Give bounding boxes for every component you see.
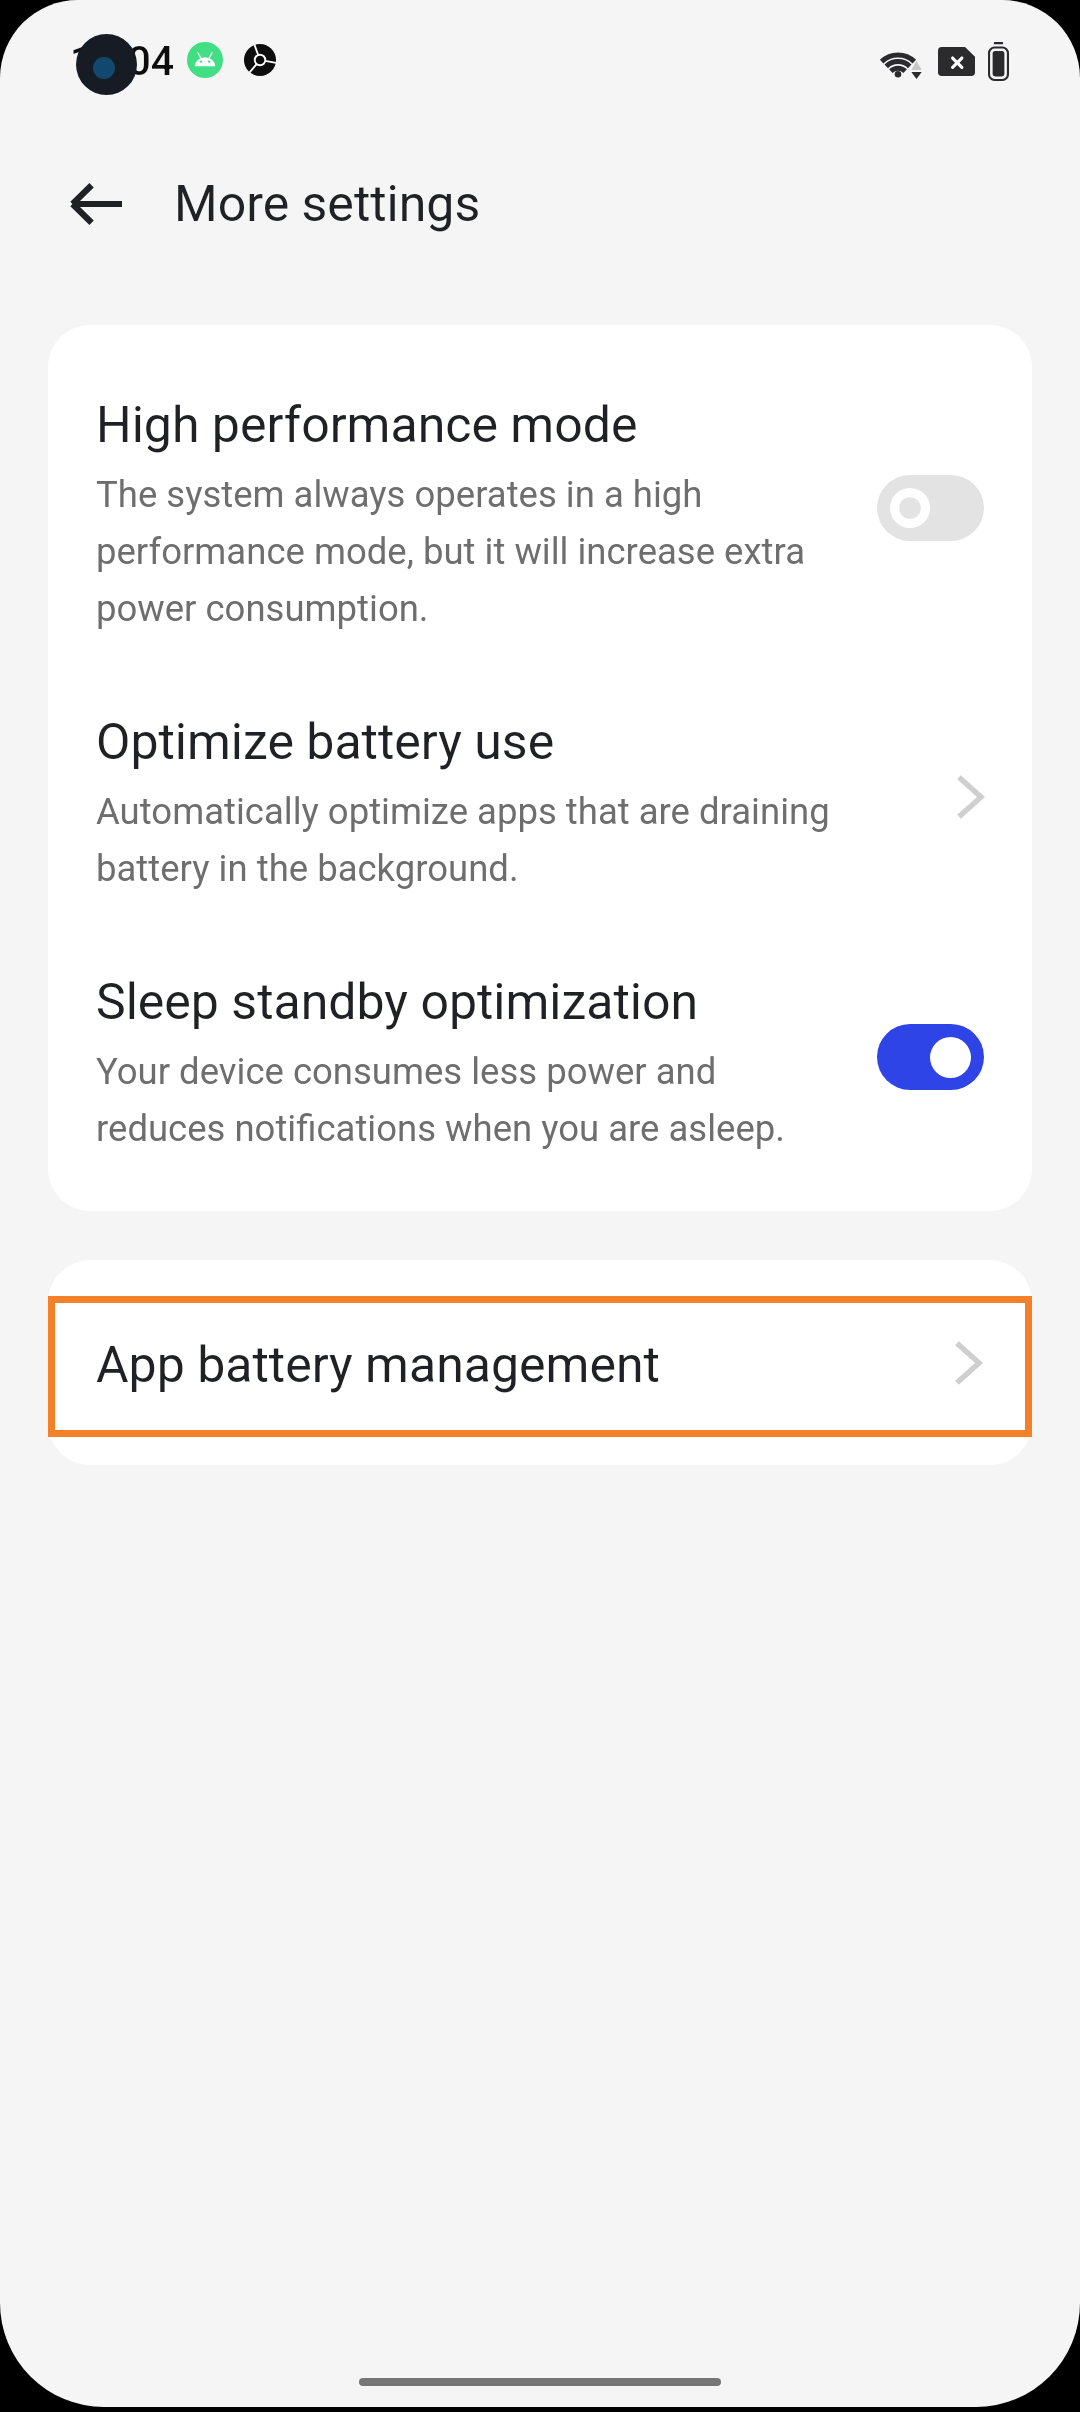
button[interactable]: High performance mode xyxy=(48,325,1032,633)
staticText: High performance mode xyxy=(96,393,638,455)
staticText: More settings xyxy=(174,175,481,234)
staticText: Optimize battery use xyxy=(96,710,555,772)
button[interactable]: Sleep standby optimization xyxy=(48,893,1032,1211)
staticText: App battery management xyxy=(96,1336,836,1395)
staticText: Automatically optimize apps that are dra… xyxy=(96,779,832,893)
staticText: Sleep standby optimization xyxy=(96,970,699,1032)
button[interactable]: High performance mode, off xyxy=(877,475,984,541)
staticText: 10:04 xyxy=(70,37,175,85)
staticText: Your device consumes less power and redu… xyxy=(96,1039,832,1153)
button[interactable]: Optimize battery use xyxy=(48,633,1032,893)
staticText: The system always operates in a high per… xyxy=(96,462,832,633)
button[interactable]: Back xyxy=(62,170,130,238)
button[interactable]: Sleep standby optimization, on xyxy=(877,1024,984,1090)
button[interactable]: App battery management xyxy=(48,1260,1032,1465)
